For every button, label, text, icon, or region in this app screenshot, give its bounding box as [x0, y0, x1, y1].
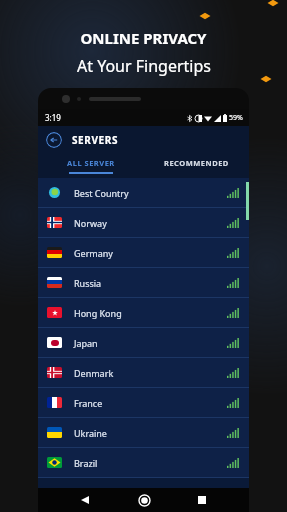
button[interactable]: Home — [132, 488, 156, 512]
button[interactable]: Back — [73, 488, 97, 512]
staticText: At Your Fingertips — [77, 55, 211, 77]
staticText: RECOMMENDED — [164, 158, 229, 168]
button[interactable]: Germany — [38, 238, 249, 267]
staticText: Japan — [74, 337, 98, 349]
button[interactable]: Best Country — [38, 178, 249, 207]
button[interactable]: Recents — [190, 488, 214, 512]
staticText: Best Country — [74, 187, 129, 199]
button[interactable]: Japan — [38, 328, 249, 357]
staticText: France — [74, 397, 103, 409]
staticText: ONLINE PRIVACY — [80, 28, 207, 48]
button[interactable]: Ukraine — [38, 418, 249, 447]
staticText: SERVERS — [72, 133, 119, 147]
staticText: Denmark — [74, 367, 114, 379]
button[interactable]: Denmark — [38, 358, 249, 387]
button[interactable]: Russia — [38, 268, 249, 297]
staticText: Hong Kong — [74, 307, 122, 319]
staticText: ALL SERVER — [67, 158, 115, 168]
staticText: Brazil — [74, 457, 98, 469]
button[interactable]: Back — [46, 132, 62, 148]
staticText: Germany — [74, 247, 113, 259]
button[interactable]: RECOMMENDED — [143, 154, 249, 178]
staticText: Norway — [74, 217, 107, 229]
button[interactable]: Norway — [38, 208, 249, 237]
staticText: Ukraine — [74, 427, 107, 439]
button[interactable]: France — [38, 388, 249, 417]
button[interactable]: ALL SERVER — [38, 154, 143, 178]
staticText: 3:19 — [45, 112, 61, 123]
button[interactable]: Brazil — [38, 448, 249, 477]
button[interactable]: Hong Kong — [38, 298, 249, 327]
staticText: Russia — [74, 277, 102, 289]
staticText: 59% — [229, 113, 243, 123]
